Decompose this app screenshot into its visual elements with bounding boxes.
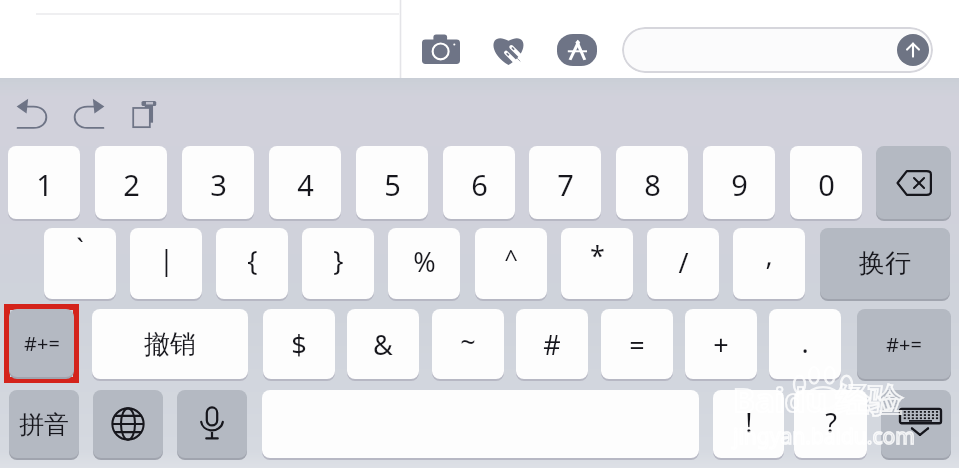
button[interactable]: & [347,309,419,379]
button[interactable]: 2 [95,146,167,219]
button[interactable]: Paste [130,99,162,131]
button[interactable]: + [685,309,757,379]
staticText: # [543,326,561,363]
staticText: 4 [297,165,314,204]
button[interactable]: Digital Touch [491,34,526,65]
staticText: { [247,242,258,279]
button[interactable]: / [647,228,719,299]
staticText: ^ [504,241,518,274]
staticText: | [159,241,174,278]
staticText: 6 [471,165,488,204]
button[interactable]: 1 [8,146,80,219]
staticText: * [590,237,605,274]
staticText: 撤销 [144,328,196,361]
button[interactable]: | [130,228,202,299]
staticText: ! [745,404,753,441]
staticText: $ [291,326,307,363]
staticText: + [713,326,729,363]
button[interactable]: App Store [557,34,597,66]
button[interactable]: ~ [432,309,504,379]
staticText: jingyan.baidu.com [733,422,915,451]
button[interactable]: 拼音 [9,390,79,458]
staticText: ` [76,230,84,267]
button[interactable]: ^ [475,228,547,299]
staticText: } [333,242,344,279]
button[interactable]: 5 [356,146,428,219]
button[interactable]: 9 [703,146,775,219]
button[interactable]: % [388,228,460,299]
staticText: . [801,324,809,361]
button[interactable]: 3 [182,146,254,219]
staticText: & [373,326,393,363]
staticText: 7 [557,165,574,204]
button[interactable]: Camera [422,34,460,64]
button[interactable]: Hide keyboard [881,390,951,458]
staticText: #+= [24,330,60,357]
staticText: 5 [384,165,401,204]
button[interactable]: #+= [857,309,951,379]
staticText: Baidu 经验 [733,377,902,422]
button[interactable]: # [516,309,588,379]
staticText: 拼音 [19,409,69,440]
staticText: 9 [731,165,748,204]
staticText: 3 [210,165,227,204]
button[interactable]: = [601,309,673,379]
button[interactable]: #+= [9,309,74,377]
staticText: = [629,326,645,363]
staticText: ? [825,404,837,441]
button[interactable]: } [302,228,374,299]
button[interactable]: Voice input [177,390,247,458]
button[interactable]: 撤销 [92,309,248,379]
staticText: #+= [886,331,922,358]
button[interactable]: 6 [443,146,515,219]
staticText: 2 [123,165,140,204]
button[interactable]: { [216,228,288,299]
button[interactable]: 0 [790,146,862,219]
button[interactable]: Undo [16,100,48,130]
staticText: 8 [644,165,661,204]
staticText: % [413,243,436,280]
staticText: ~ [460,323,476,360]
button[interactable]: 换行 [820,228,950,299]
button[interactable]: ? [794,390,867,458]
button[interactable]: . [769,309,841,379]
staticText: 1 [36,165,53,204]
button[interactable]: 4 [269,146,341,219]
button[interactable]: ` [44,228,116,299]
staticText: , [765,236,773,273]
button[interactable]: Redo [73,100,105,130]
button[interactable]: $ [263,309,335,379]
staticText: 换行 [859,247,911,280]
button[interactable]: , [733,228,805,299]
button[interactable]: 7 [529,146,601,219]
staticText: / [678,244,689,281]
button[interactable]: * [561,228,633,299]
staticText: 0 [818,165,835,204]
button[interactable]: Backspace [876,146,951,219]
button[interactable] [622,27,933,73]
button[interactable]: 8 [616,146,688,219]
button[interactable]: Send [897,34,929,66]
button[interactable]: Change language [93,390,163,458]
button[interactable]: ! [713,390,784,458]
